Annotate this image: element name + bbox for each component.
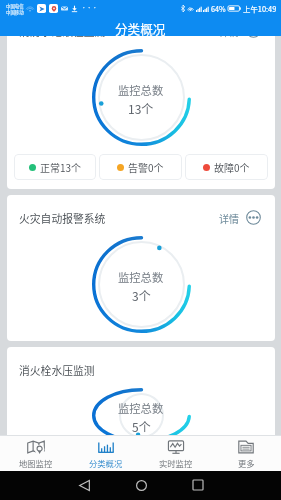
button[interactable]: 告警0个 (99, 154, 182, 180)
staticText: 5个 (132, 418, 151, 435)
button[interactable]: 详情 (219, 21, 261, 40)
button[interactable]: 火灾自动报警系统 (7, 195, 275, 341)
staticText: 3个 (132, 287, 151, 304)
staticText: 64% (211, 4, 226, 14)
button[interactable]: 详情 (219, 208, 261, 227)
staticText: 13个 (128, 100, 154, 117)
staticText: 分类概况 (115, 19, 166, 37)
staticText: 实时监控 (159, 457, 193, 469)
staticText: 中国移动 (6, 9, 24, 15)
button[interactable]: 消火栓水压监测 (7, 347, 275, 443)
staticText: 告警0个 (128, 160, 164, 174)
button[interactable]: Home (127, 471, 155, 499)
staticText: 正常13个 (40, 160, 82, 174)
button[interactable]: 更多 (211, 436, 281, 471)
staticText: 监控总数 (118, 269, 164, 285)
button[interactable]: Back (70, 471, 98, 499)
staticText: 消防水池液位监测 (19, 23, 106, 39)
button[interactable]: 实时监控 (141, 436, 211, 471)
staticText: 上午10:49 (243, 3, 277, 14)
staticText: 更多 (238, 457, 255, 469)
button[interactable]: Recent apps (184, 471, 212, 499)
button[interactable]: 地图监控 (0, 436, 71, 471)
staticText: 监控总数 (118, 82, 164, 98)
button[interactable]: 正常13个 (14, 154, 96, 180)
staticText: 消火栓水压监测 (19, 362, 95, 378)
staticText: 地图监控 (19, 457, 53, 469)
staticText: 分类概况 (89, 457, 123, 469)
staticText: 详情 (219, 24, 239, 38)
button[interactable]: 分类概况 (71, 436, 141, 471)
button[interactable]: 消防水池液位监测 (7, 8, 275, 189)
staticText: 中国电信 (6, 3, 24, 9)
staticText: 详情 (219, 211, 239, 225)
staticText: ··· (81, 4, 98, 12)
staticText: 故障0个 (214, 160, 250, 174)
staticText: 火灾自动报警系统 (19, 210, 106, 226)
staticText: 监控总数 (118, 400, 164, 416)
button[interactable]: 故障0个 (185, 154, 268, 180)
